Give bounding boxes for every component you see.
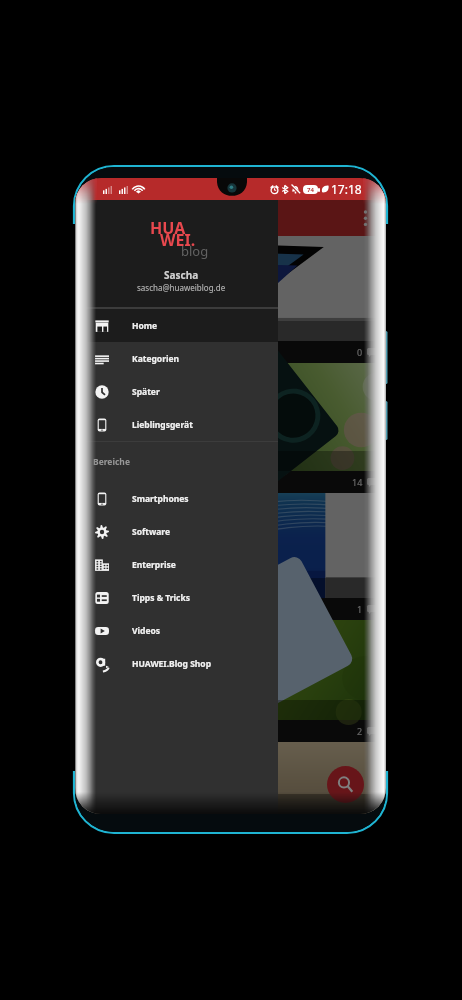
staticText: Huawei MatePad Pro ist da xyxy=(83,322,244,338)
staticText: Home xyxy=(132,320,158,332)
staticText: Smartphones xyxy=(132,493,189,505)
button[interactable]: Huawei P40 lite xyxy=(75,742,386,814)
button[interactable]: Software xyxy=(75,515,278,548)
staticText: HUAWEI.Blog Shop xyxy=(132,658,212,670)
button[interactable]: Smartphones xyxy=(75,482,278,515)
staticText: Später xyxy=(132,386,160,398)
staticText: Sascha xyxy=(164,268,199,282)
button[interactable]: Lieblingsgerät xyxy=(75,408,278,441)
staticText: Kategorien xyxy=(132,353,180,365)
staticText: Software xyxy=(132,526,171,538)
button[interactable]: Huawei Mate 30 Pro ist da xyxy=(75,363,386,493)
staticText: 14 xyxy=(352,476,363,488)
staticText: HUA xyxy=(150,217,186,239)
staticText: Enterprise xyxy=(132,559,176,571)
button[interactable]: Huawei MatePad Pro ist da xyxy=(75,236,386,363)
staticText: Huawei P40 lite xyxy=(83,795,176,811)
staticText: Huawei Mate 30 Pro ist da xyxy=(83,452,239,468)
staticText: Huawei P40 Pro ist da xyxy=(83,579,212,595)
button[interactable]: Search xyxy=(327,766,364,803)
staticText: 17:18 xyxy=(331,181,362,197)
button[interactable]: Home xyxy=(75,309,278,342)
button[interactable]: Kategorien xyxy=(75,342,278,375)
staticText: Lieblingsgerät xyxy=(132,419,193,431)
staticText: Videos xyxy=(132,625,161,637)
button[interactable]: Videos xyxy=(75,614,278,647)
staticText: 1 xyxy=(357,603,363,615)
staticText: Kamera-Aufnahmen xyxy=(83,701,204,717)
staticText: 0 xyxy=(357,346,363,358)
staticText: WEI. xyxy=(160,229,196,251)
staticText: sascha@huaweiblog.de xyxy=(137,282,226,293)
staticText: Bereiche xyxy=(93,456,130,468)
button[interactable]: HUAWEI.Blog Shop xyxy=(75,647,278,680)
button[interactable]: More options xyxy=(354,206,376,228)
button[interactable]: Tipps & Tricks xyxy=(75,581,278,614)
button[interactable]: Später xyxy=(75,375,278,408)
button[interactable]: Enterprise xyxy=(75,548,278,581)
staticText: 2 xyxy=(357,725,363,737)
button[interactable]: Huawei P40 Pro ist da xyxy=(75,493,386,620)
staticText: blog xyxy=(181,242,209,260)
button[interactable]: Kamera-Aufnahmen xyxy=(75,620,386,742)
staticText: 74 xyxy=(307,186,314,194)
staticText: Tipps & Tricks xyxy=(132,592,190,604)
